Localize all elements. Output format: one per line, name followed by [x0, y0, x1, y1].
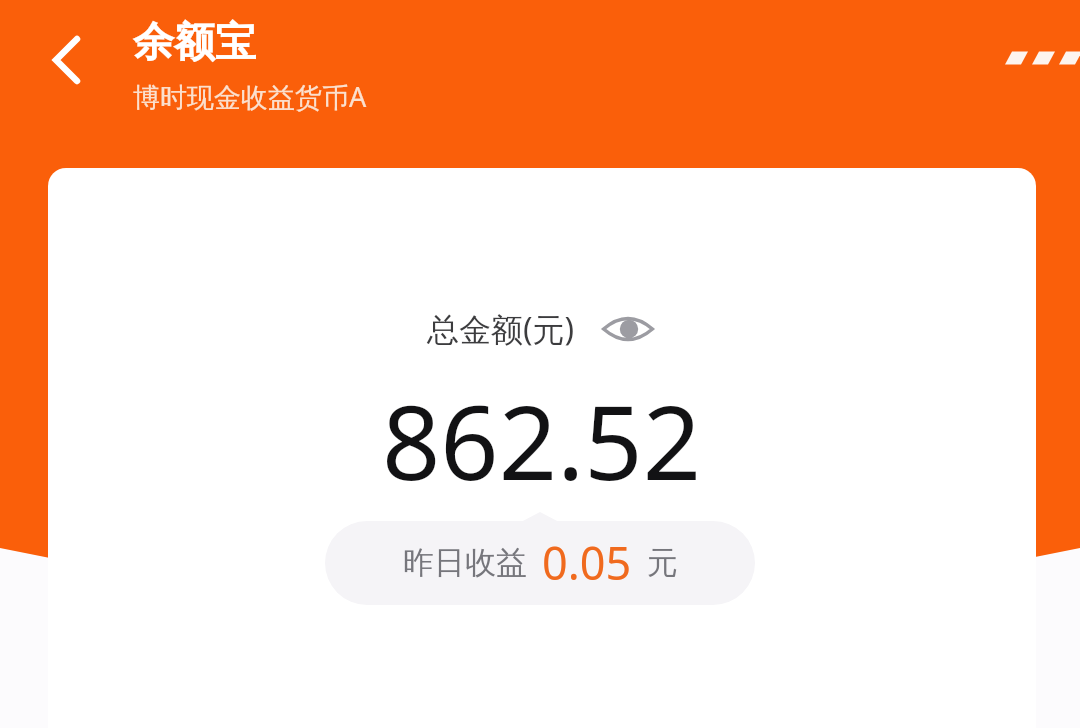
staticText: 862.52 — [382, 371, 702, 510]
staticText: 0.05 — [542, 532, 632, 593]
staticText: 总金额(元) — [427, 307, 575, 351]
staticText: 昨日收益 — [403, 543, 527, 582]
button[interactable]: More options — [960, 24, 1060, 92]
button[interactable]: 昨日收益 — [325, 512, 755, 605]
button[interactable]: Back — [26, 20, 106, 100]
staticText: 余额宝 — [133, 17, 256, 69]
button[interactable]: Toggle amount visibility — [599, 306, 657, 352]
staticText: 博时现金收益货币A — [133, 78, 367, 115]
staticText: 元 — [647, 543, 678, 582]
